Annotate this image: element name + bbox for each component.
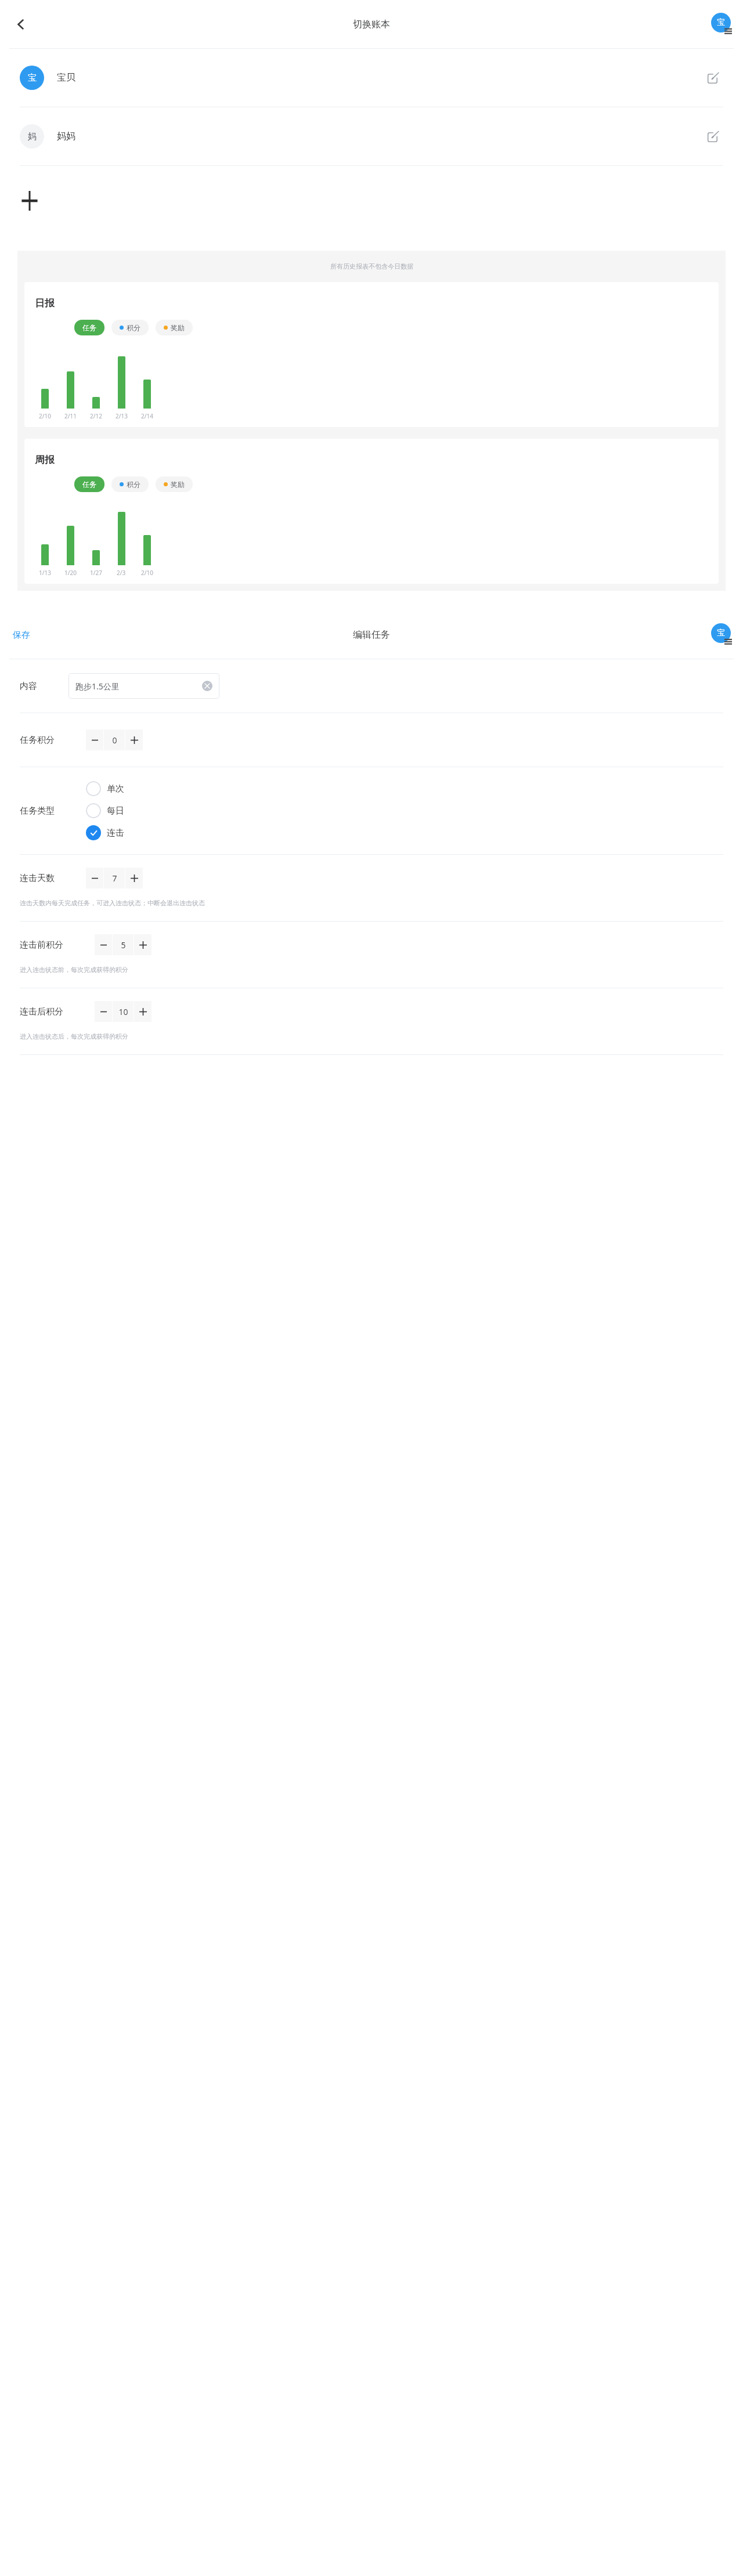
staticText: 单次 bbox=[107, 783, 124, 794]
button[interactable]: Edit 宝贝 bbox=[702, 67, 723, 88]
button[interactable]: Add account bbox=[0, 166, 743, 236]
staticText: 奖励 bbox=[171, 480, 185, 489]
button[interactable]: 单次 bbox=[86, 781, 124, 796]
staticText: 编辑任务 bbox=[353, 629, 390, 641]
staticText: 连击天数 bbox=[20, 873, 55, 884]
staticText: 进入连击状态前，每次完成获得的积分 bbox=[20, 966, 128, 974]
button[interactable]: Increase bbox=[134, 934, 152, 955]
staticText: 2/13 bbox=[116, 412, 128, 420]
staticText: 跑步1.5公里 bbox=[75, 681, 120, 692]
staticText: 宝贝 bbox=[57, 72, 75, 84]
button[interactable]: Increase bbox=[125, 868, 143, 888]
button[interactable]: 积分 bbox=[111, 476, 149, 492]
button[interactable]: Clear bbox=[202, 681, 212, 691]
staticText: 0 bbox=[112, 735, 117, 746]
staticText: 任务 bbox=[82, 480, 96, 489]
button[interactable]: 任务 bbox=[74, 476, 104, 492]
staticText: 1/27 bbox=[90, 569, 102, 577]
staticText: 积分 bbox=[127, 480, 140, 489]
button[interactable]: 奖励 bbox=[156, 320, 193, 335]
staticText: 切换账本 bbox=[353, 19, 390, 30]
staticText: 所有历史报表不包含今日数据 bbox=[330, 262, 413, 270]
staticText: 妈妈 bbox=[57, 131, 75, 142]
button[interactable]: 跑步1.5公里 bbox=[68, 673, 219, 699]
staticText: 奖励 bbox=[171, 323, 185, 332]
button[interactable]: Decrease bbox=[86, 868, 103, 888]
staticText: 2/12 bbox=[90, 412, 102, 420]
button[interactable]: Increase bbox=[134, 1001, 152, 1022]
button[interactable]: Edit 妈妈 bbox=[702, 126, 723, 147]
button[interactable]: 奖励 bbox=[156, 476, 193, 492]
staticText: 2/14 bbox=[141, 412, 153, 420]
button[interactable]: Back bbox=[5, 8, 37, 41]
staticText: 积分 bbox=[127, 323, 140, 332]
staticText: 宝 bbox=[717, 17, 725, 28]
staticText: 任务积分 bbox=[20, 735, 55, 746]
staticText: 宝 bbox=[28, 73, 37, 84]
button[interactable]: 妈 bbox=[0, 107, 743, 166]
staticText: 10 bbox=[118, 1006, 128, 1017]
staticText: 1/20 bbox=[64, 569, 77, 577]
staticText: 宝 bbox=[717, 628, 725, 638]
staticText: 内容 bbox=[20, 681, 37, 692]
button[interactable]: Decrease bbox=[95, 934, 112, 955]
staticText: 进入连击状态后，每次完成获得的积分 bbox=[20, 1032, 128, 1040]
staticText: 日报 bbox=[35, 297, 55, 309]
button[interactable]: 任务 bbox=[74, 320, 104, 335]
button[interactable]: 连击 bbox=[86, 825, 124, 840]
button[interactable]: Increase bbox=[125, 729, 143, 750]
staticText: 1/13 bbox=[39, 569, 51, 577]
staticText: 5 bbox=[121, 940, 126, 951]
button[interactable]: Decrease bbox=[95, 1001, 112, 1022]
staticText: 任务类型 bbox=[20, 805, 55, 816]
staticText: 连击天数内每天完成任务，可进入连击状态；中断会退出连击状态 bbox=[20, 899, 205, 907]
button[interactable]: Decrease bbox=[86, 729, 103, 750]
staticText: 7 bbox=[112, 873, 117, 884]
staticText: 任务 bbox=[82, 323, 96, 332]
staticText: 连击后积分 bbox=[20, 1006, 63, 1017]
staticText: 2/10 bbox=[141, 569, 153, 577]
staticText: 连击 bbox=[107, 828, 124, 839]
staticText: 2/3 bbox=[117, 569, 126, 577]
staticText: 保存 bbox=[13, 630, 30, 641]
staticText: 2/11 bbox=[64, 412, 77, 420]
staticText: 连击前积分 bbox=[20, 940, 63, 951]
button[interactable]: 积分 bbox=[111, 320, 149, 335]
button[interactable]: 宝 bbox=[0, 49, 743, 107]
staticText: 妈 bbox=[28, 131, 37, 142]
staticText: 每日 bbox=[107, 805, 124, 816]
button[interactable]: 每日 bbox=[86, 803, 124, 818]
button[interactable]: 保存 bbox=[9, 625, 34, 645]
staticText: 周报 bbox=[35, 454, 55, 466]
button[interactable]: Account menu bbox=[708, 12, 734, 37]
button[interactable]: Account menu bbox=[708, 622, 734, 648]
staticText: 2/10 bbox=[39, 412, 51, 420]
